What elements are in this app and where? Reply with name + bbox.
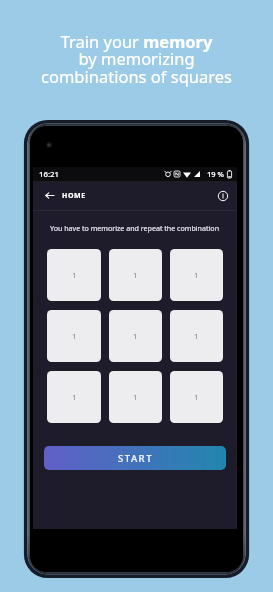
staticText: You have to memorize and repeat the comb…	[50, 223, 220, 233]
staticText: 1	[194, 331, 199, 341]
staticText: START	[118, 452, 153, 465]
staticText: 1	[194, 392, 199, 402]
staticText: Train your memory by memorizing combinat…	[0, 30, 273, 88]
button[interactable]: 1	[170, 371, 223, 423]
staticText: 1	[133, 331, 138, 341]
button[interactable]: Back	[42, 188, 57, 203]
staticText: 1	[133, 392, 138, 402]
button[interactable]: 1	[109, 249, 162, 301]
staticText: 19 %	[207, 169, 224, 179]
staticText: 1	[194, 270, 199, 280]
button[interactable]: START	[44, 446, 226, 470]
button[interactable]: 1	[47, 310, 101, 362]
button[interactable]: 1	[47, 249, 101, 301]
button[interactable]: 1	[109, 310, 162, 362]
staticText: 1	[133, 270, 138, 280]
staticText: 1	[72, 331, 77, 341]
staticText: 1	[72, 270, 77, 280]
staticText: 1	[72, 392, 77, 402]
button[interactable]: 1	[109, 371, 162, 423]
staticText: HOME	[62, 191, 86, 201]
staticText: 16:21	[39, 169, 59, 180]
button[interactable]: Info	[215, 188, 230, 203]
button[interactable]: 1	[170, 249, 223, 301]
button[interactable]: 1	[47, 371, 101, 423]
button[interactable]: 1	[170, 310, 223, 362]
